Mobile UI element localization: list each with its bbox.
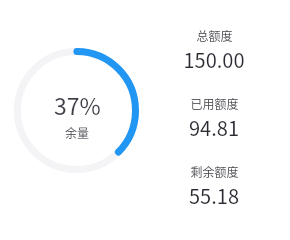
button[interactable]: 总额度	[164, 27, 264, 74]
staticText: 余量	[65, 124, 90, 141]
staticText: 剩余额度	[190, 163, 239, 180]
staticText: 55.18	[189, 181, 239, 210]
button[interactable]: 已用额度	[164, 95, 264, 142]
staticText: 37%	[54, 88, 101, 121]
staticText: 已用额度	[190, 95, 239, 112]
button[interactable]: 余量 37%	[14, 48, 139, 173]
staticText: 150.00	[183, 45, 245, 74]
staticText: 总额度	[196, 27, 233, 44]
button[interactable]: 剩余额度	[164, 163, 264, 210]
staticText: 94.81	[189, 113, 239, 142]
